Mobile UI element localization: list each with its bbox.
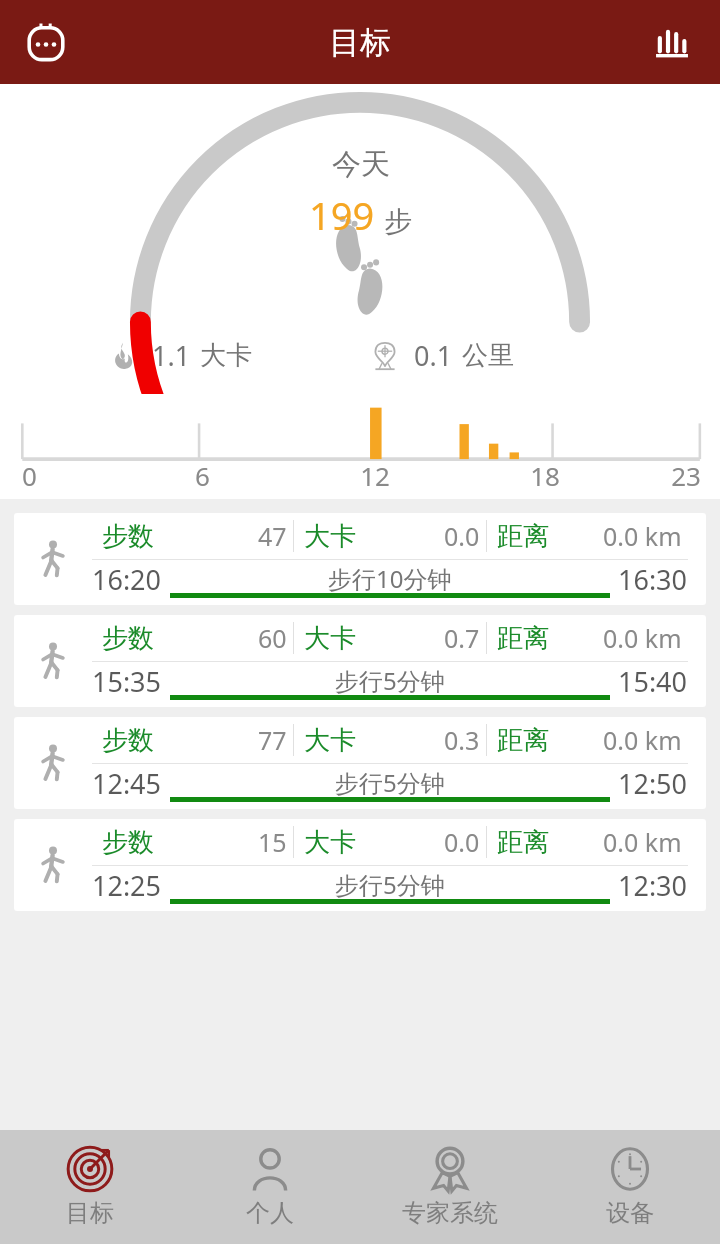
staticText: 步行5分钟 bbox=[335, 766, 445, 799]
staticText: 199 bbox=[309, 189, 375, 241]
button[interactable]: Menu bbox=[18, 14, 74, 70]
staticText: 23 bbox=[671, 458, 701, 493]
staticText: 距离 bbox=[497, 724, 549, 757]
staticText: 0.3 bbox=[444, 723, 480, 757]
staticText: 1.1 bbox=[152, 337, 191, 374]
staticText: 个人 bbox=[246, 1198, 294, 1228]
staticText: 步数 bbox=[102, 520, 154, 553]
button[interactable]: 设备 bbox=[540, 1130, 720, 1244]
staticText: 12:50 bbox=[618, 765, 688, 802]
staticText: 专家系统 bbox=[402, 1198, 498, 1228]
staticText: 15:35 bbox=[92, 663, 162, 700]
button[interactable]: 步数 bbox=[14, 717, 706, 809]
staticText: 大卡 bbox=[200, 339, 252, 372]
staticText: 大卡 bbox=[304, 724, 356, 757]
staticText: 15 bbox=[258, 825, 287, 859]
staticText: 77 bbox=[258, 723, 287, 757]
staticText: 16:20 bbox=[92, 561, 162, 598]
button[interactable]: 专家系统 bbox=[360, 1130, 540, 1244]
staticText: 步行5分钟 bbox=[335, 664, 445, 697]
staticText: 0.0 bbox=[444, 519, 480, 553]
staticText: 0.0 km bbox=[603, 825, 682, 859]
staticText: 设备 bbox=[606, 1198, 654, 1228]
staticText: 今天 bbox=[332, 146, 390, 183]
staticText: 6 bbox=[195, 458, 210, 493]
staticText: 0.0 km bbox=[603, 621, 682, 655]
staticText: 大卡 bbox=[304, 826, 356, 859]
staticText: 公里 bbox=[462, 339, 514, 372]
staticText: 步行10分钟 bbox=[328, 562, 452, 595]
staticText: 0.0 bbox=[444, 825, 480, 859]
staticText: 15:40 bbox=[618, 663, 688, 700]
staticText: 距离 bbox=[497, 622, 549, 655]
staticText: 大卡 bbox=[304, 622, 356, 655]
staticText: 12:30 bbox=[618, 867, 688, 904]
button[interactable]: 步数 bbox=[14, 615, 706, 707]
staticText: 距离 bbox=[497, 520, 549, 553]
staticText: 大卡 bbox=[304, 520, 356, 553]
staticText: 步行5分钟 bbox=[335, 868, 445, 901]
staticText: 步 bbox=[384, 204, 412, 239]
staticText: 12 bbox=[360, 458, 390, 493]
button[interactable]: 步数 bbox=[14, 819, 706, 911]
staticText: 18 bbox=[530, 458, 560, 493]
staticText: 16:30 bbox=[618, 561, 688, 598]
staticText: 距离 bbox=[497, 826, 549, 859]
staticText: 12:25 bbox=[92, 867, 162, 904]
button[interactable]: 目标 bbox=[0, 1130, 180, 1244]
staticText: 步数 bbox=[102, 724, 154, 757]
staticText: 步数 bbox=[102, 826, 154, 859]
button[interactable]: 步数 bbox=[14, 513, 706, 605]
staticText: 0.7 bbox=[444, 621, 480, 655]
staticText: 目标 bbox=[329, 23, 391, 62]
staticText: 47 bbox=[258, 519, 287, 553]
staticText: 步数 bbox=[102, 622, 154, 655]
staticText: 60 bbox=[258, 621, 287, 655]
staticText: 0.0 km bbox=[603, 723, 682, 757]
staticText: 12:45 bbox=[92, 765, 162, 802]
button[interactable]: 个人 bbox=[180, 1130, 360, 1244]
staticText: 0.0 km bbox=[603, 519, 682, 553]
staticText: 0.1 bbox=[414, 337, 453, 374]
staticText: 0 bbox=[22, 458, 37, 493]
button[interactable]: Statistics bbox=[644, 14, 700, 70]
staticText: 目标 bbox=[66, 1198, 114, 1228]
